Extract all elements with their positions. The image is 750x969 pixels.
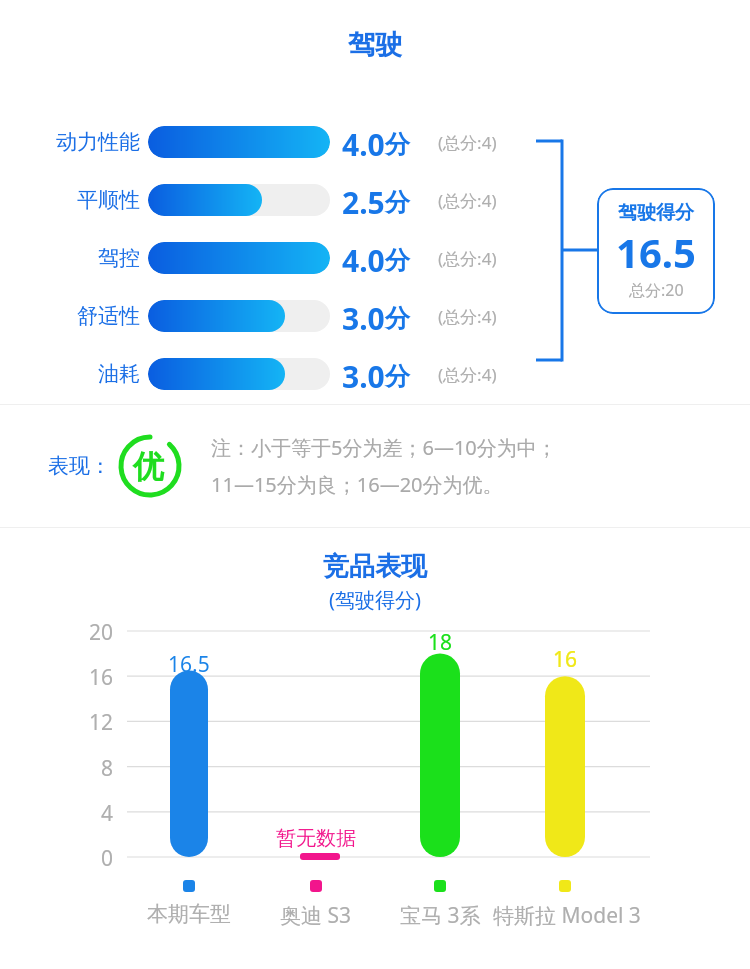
staticText: 18 [428, 628, 453, 657]
staticText: 3.0 [342, 356, 385, 392]
staticText: 8 [101, 754, 114, 783]
staticText: 优 [133, 447, 164, 486]
staticText: 16.5 [616, 225, 696, 279]
staticText: 油耗 [98, 361, 140, 387]
button[interactable]: 驾控 [0, 240, 750, 276]
button[interactable]: 宝马 3系 [350, 901, 530, 930]
staticText: (总分:4) [438, 189, 497, 212]
staticText: 11—15分为良；16—20分为优。 [211, 471, 503, 498]
staticText: (总分:4) [438, 363, 497, 386]
button[interactable]: 本期车型 [99, 901, 279, 927]
staticText: (总分:4) [438, 305, 497, 328]
staticText: 20 [89, 618, 114, 647]
button[interactable]: 平顺性 [0, 182, 750, 218]
staticText: 宝马 3系 [400, 901, 481, 930]
staticText: 舒适性 [77, 303, 140, 329]
staticText: 16.5 [168, 650, 210, 679]
staticText: 本期车型 [147, 901, 231, 927]
staticText: (总分:4) [438, 131, 497, 154]
staticText: 动力性能 [56, 129, 140, 155]
staticText: 0 [101, 844, 114, 873]
staticText: 12 [89, 708, 114, 737]
staticText: (总分:4) [438, 247, 497, 270]
staticText: 暂无数据 [276, 826, 356, 851]
staticText: 注：小于等于5分为差；6—10分为中； [211, 434, 557, 461]
staticText: 平顺性 [77, 187, 140, 213]
staticText: 表现： [48, 453, 111, 479]
staticText: 分 [385, 303, 410, 334]
staticText: 特斯拉 Model 3 [493, 901, 641, 930]
staticText: 分 [385, 187, 410, 218]
staticText: (驾驶得分) [329, 586, 421, 613]
staticText: 16 [553, 645, 578, 674]
staticText: 奥迪 S3 [280, 901, 352, 930]
button[interactable]: 驾驶得分 [597, 188, 715, 314]
button[interactable]: 油耗 [0, 356, 750, 392]
staticText: 4 [101, 799, 114, 828]
staticText: 竞品表现 [323, 550, 427, 583]
staticText: 总分:20 [629, 279, 684, 301]
staticText: 驾驶得分 [618, 201, 694, 225]
staticText: 4.0 [342, 240, 385, 276]
staticText: 16 [89, 663, 114, 692]
staticText: 3.0 [342, 298, 385, 334]
staticText: 驾控 [98, 245, 140, 271]
button[interactable]: 特斯拉 Model 3 [477, 901, 657, 930]
button[interactable]: 奥迪 S3 [226, 901, 406, 930]
button[interactable]: 舒适性 [0, 298, 750, 334]
other: 优 rating stamp [111, 427, 189, 505]
staticText: 2.5 [342, 182, 385, 218]
staticText: 4.0 [342, 124, 385, 160]
staticText: 分 [385, 129, 410, 160]
staticText: 分 [385, 245, 410, 276]
staticText: 分 [385, 361, 410, 392]
staticText: 驾驶 [348, 28, 402, 62]
button[interactable]: 动力性能 [0, 124, 750, 160]
